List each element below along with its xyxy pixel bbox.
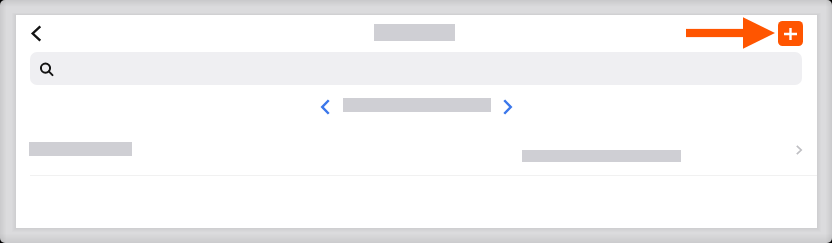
- button[interactable]: Next: [492, 92, 522, 122]
- button[interactable]: [30, 52, 802, 85]
- button[interactable]: Previous: [310, 92, 340, 122]
- button[interactable]: [16, 127, 817, 175]
- button[interactable]: Back: [20, 17, 52, 49]
- button[interactable]: Add: [778, 21, 803, 46]
